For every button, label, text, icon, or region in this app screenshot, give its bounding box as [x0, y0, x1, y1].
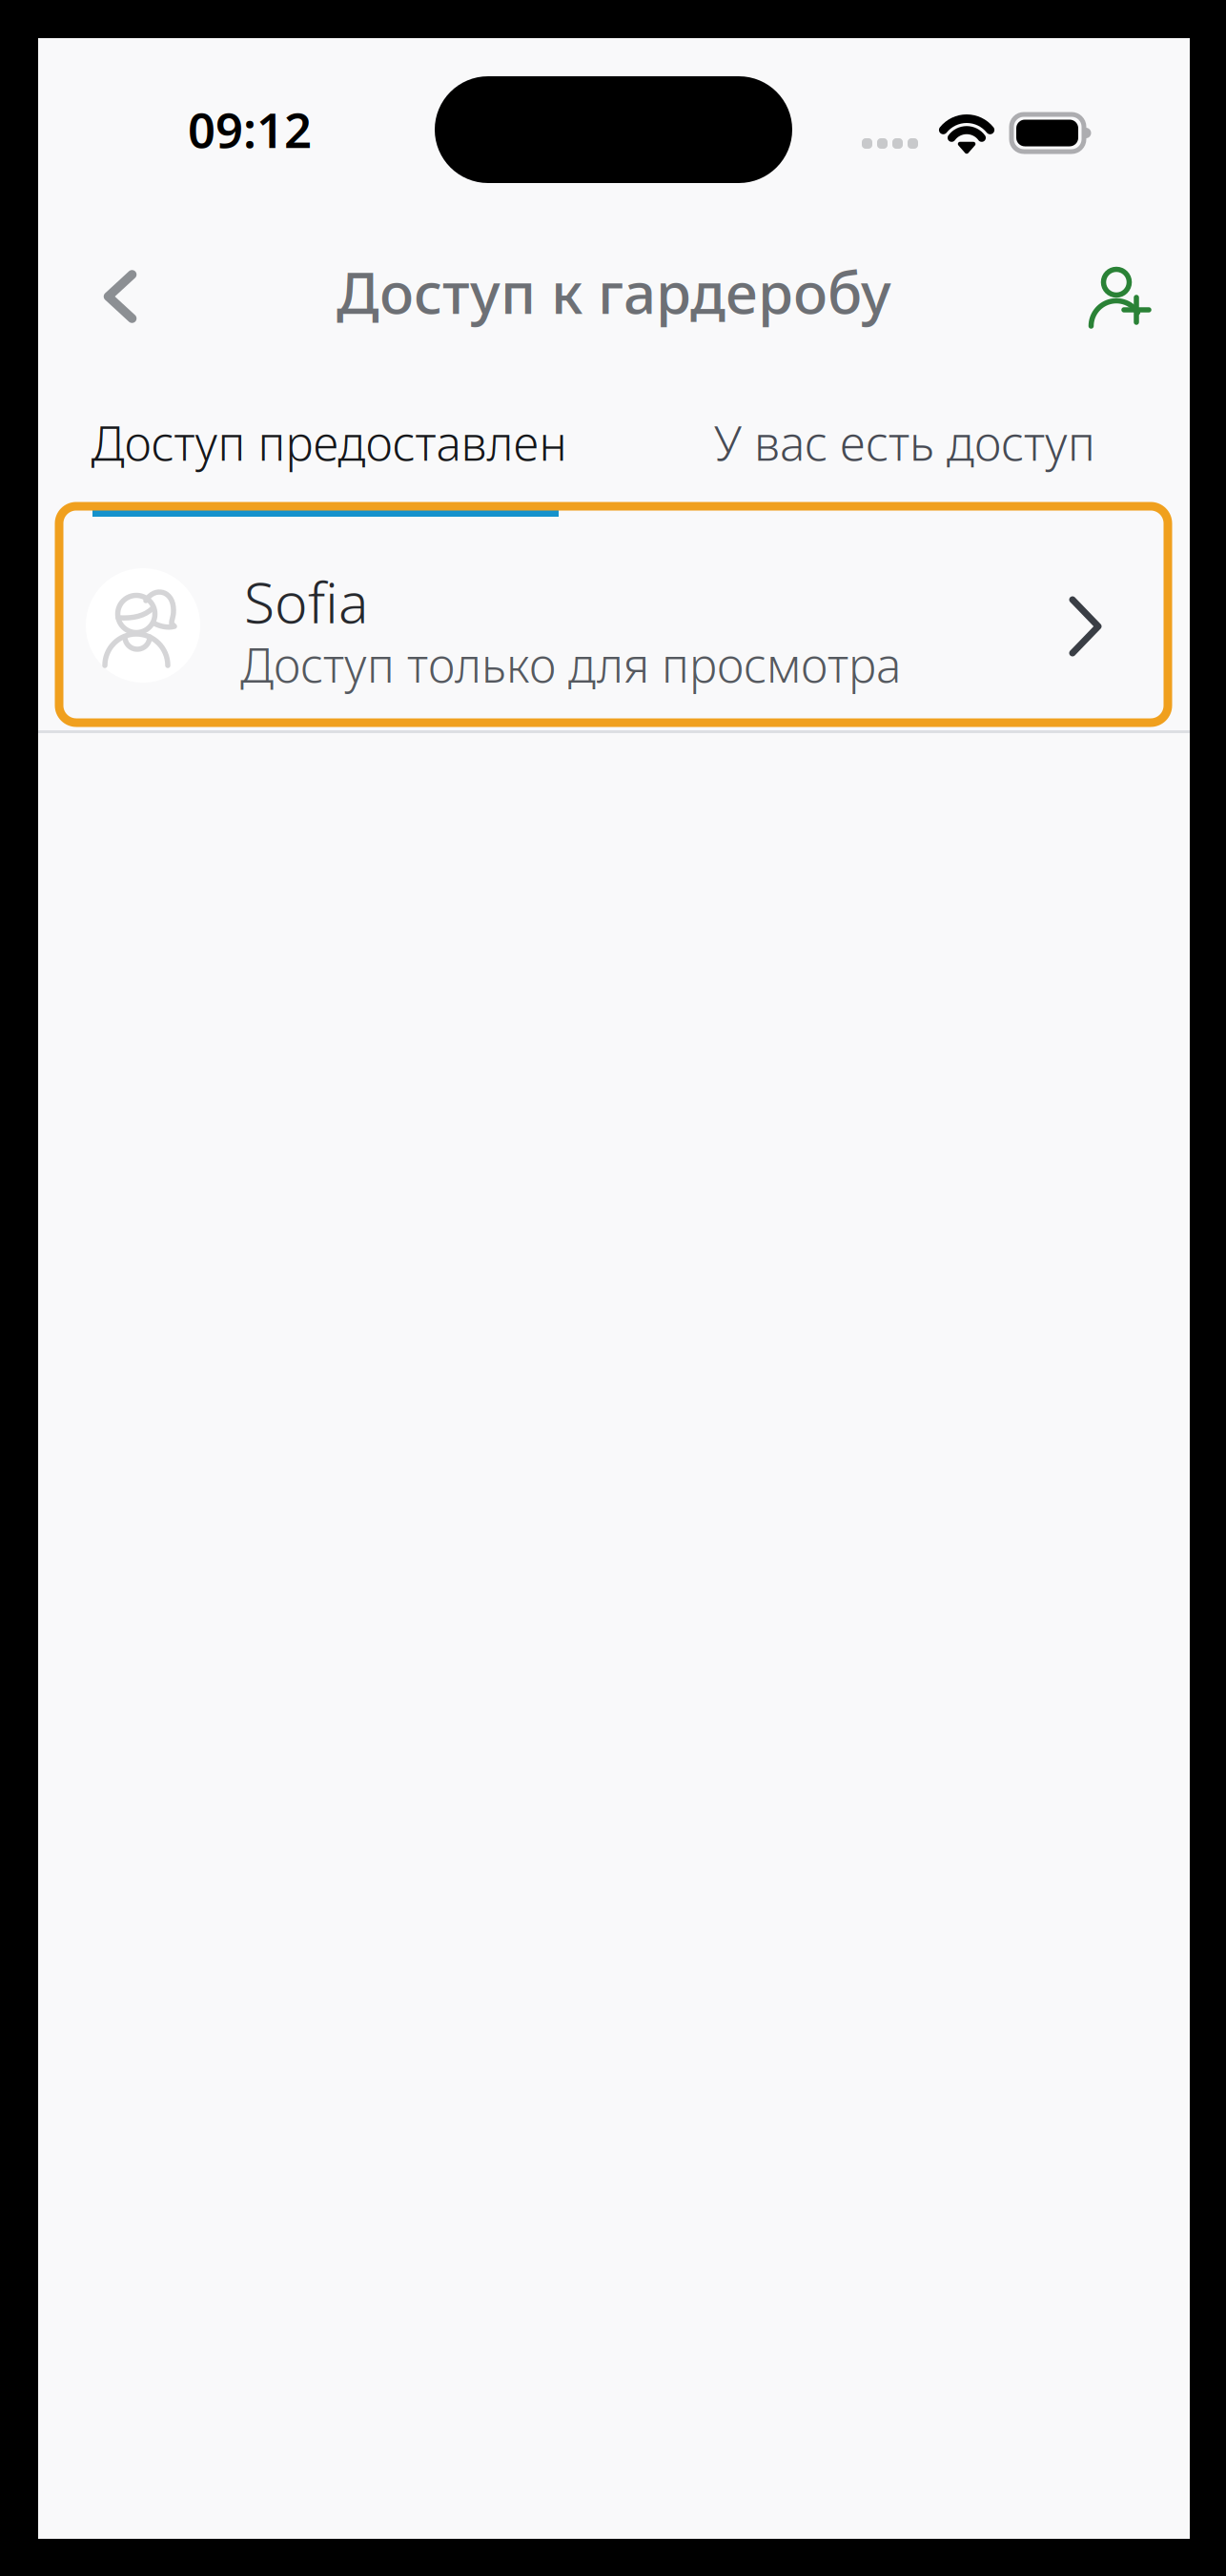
staticText: Доступ предоставлен — [91, 411, 567, 474]
button[interactable]: У вас есть доступ — [620, 393, 1190, 492]
button[interactable]: Sofia — [38, 503, 1190, 725]
button[interactable]: Back — [41, 240, 199, 353]
staticText: У вас есть доступ — [714, 411, 1095, 474]
staticText: 09:12 — [188, 97, 312, 161]
button[interactable]: Доступ предоставлен — [38, 393, 620, 492]
staticText: Sofia — [244, 564, 368, 639]
staticText: Доступ только для просмотра — [240, 633, 901, 695]
staticText: Доступ к гардеробу — [337, 254, 891, 330]
button[interactable]: Add person — [1041, 241, 1199, 354]
